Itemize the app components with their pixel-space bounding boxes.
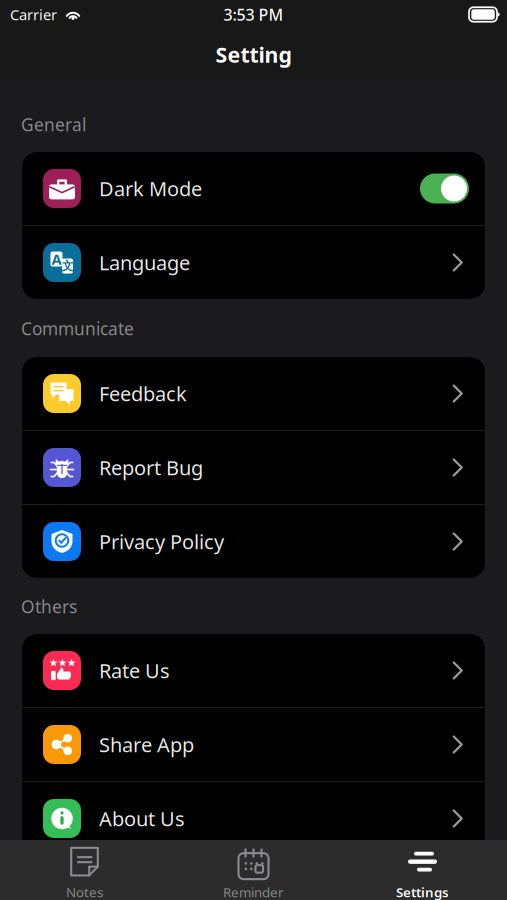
staticText: 文 — [61, 259, 73, 273]
staticText: Settings — [396, 883, 449, 900]
button[interactable]: Privacy Policy — [22, 505, 485, 578]
button[interactable]: About Us — [22, 782, 485, 855]
staticText: Others — [21, 595, 77, 618]
button[interactable]: Reminder — [169, 840, 338, 900]
staticText: Notes — [66, 883, 103, 900]
staticText: Setting — [215, 40, 291, 69]
button[interactable]: Feedback — [22, 357, 485, 430]
staticText: Carrier — [10, 5, 57, 24]
button[interactable]: Dark Mode — [22, 152, 485, 225]
staticText: 3:53 PM — [223, 4, 283, 25]
staticText: Privacy Policy — [99, 528, 224, 555]
button[interactable]: Rate Us — [22, 634, 485, 707]
staticText: Language — [99, 249, 190, 276]
staticText: General — [21, 113, 86, 136]
staticText: Report Bug — [99, 454, 203, 481]
staticText: Dark Mode — [99, 175, 202, 202]
button[interactable]: 文 — [22, 226, 485, 299]
staticText: Reminder — [223, 883, 284, 900]
button[interactable]: Share App — [22, 708, 485, 781]
staticText: Rate Us — [99, 657, 170, 684]
button[interactable]: Settings — [338, 840, 507, 900]
staticText: About Us — [99, 805, 185, 832]
staticText: Share App — [99, 731, 194, 758]
button[interactable]: Notes — [0, 840, 169, 900]
staticText: A — [51, 249, 61, 269]
button[interactable]: Report Bug — [22, 431, 485, 504]
staticText: Feedback — [99, 380, 187, 407]
staticText: Communicate — [21, 317, 134, 340]
